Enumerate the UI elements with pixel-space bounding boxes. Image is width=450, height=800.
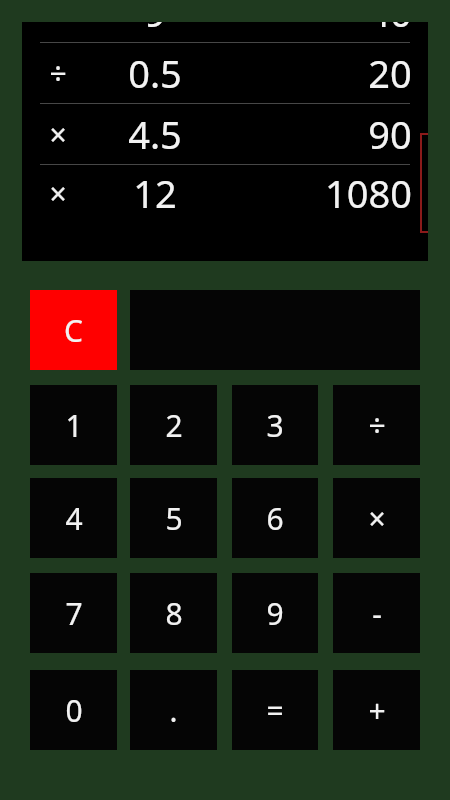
staticText: × (49, 173, 67, 214)
staticText: 4 (65, 498, 83, 539)
staticText: 8 (165, 593, 183, 634)
button[interactable]: C (30, 290, 117, 370)
button[interactable]: 0 (30, 670, 117, 750)
button[interactable]: 8 (130, 573, 217, 653)
staticText: × (368, 498, 386, 539)
staticText: ÷ (49, 53, 67, 94)
button[interactable]: 7 (30, 573, 117, 653)
button[interactable]: . (130, 670, 217, 750)
button[interactable]: × (22, 104, 428, 164)
staticText: = (266, 690, 284, 731)
button[interactable]: ÷ (333, 385, 420, 465)
staticText: × (49, 114, 67, 155)
staticText: 1 (65, 405, 83, 446)
staticText: 3 (266, 405, 284, 446)
button[interactable]: 2 (130, 385, 217, 465)
button[interactable]: 9 (232, 573, 318, 653)
button[interactable]: × (333, 478, 420, 558)
staticText: 0.5 (128, 47, 182, 99)
staticText: 4.5 (128, 108, 182, 160)
staticText: 9 (144, 22, 166, 38)
staticText: - (372, 593, 382, 634)
button[interactable]: 5 (130, 478, 217, 558)
staticText: 9 (266, 593, 284, 634)
staticText: 1080 (325, 167, 412, 219)
button[interactable]: × (22, 165, 428, 221)
button[interactable]: = (232, 670, 318, 750)
staticText: 2 (165, 405, 183, 446)
staticText: 7 (65, 593, 83, 634)
button[interactable]: 3 (232, 385, 318, 465)
staticText: 20 (368, 47, 412, 99)
button[interactable]: + (333, 670, 420, 750)
button[interactable]: ÷ (22, 43, 428, 103)
button[interactable]: + (22, 22, 428, 42)
button[interactable]: 4 (30, 478, 117, 558)
staticText: C (64, 310, 83, 351)
staticText: 5 (165, 498, 183, 539)
staticText: 40 (368, 22, 412, 38)
button[interactable]: + (22, 22, 428, 261)
staticText: 12 (133, 167, 177, 219)
button[interactable]: 6 (232, 478, 318, 558)
staticText: + (368, 690, 386, 731)
staticText: ÷ (368, 405, 386, 446)
button[interactable]: - (333, 573, 420, 653)
staticText: 6 (266, 498, 284, 539)
button[interactable]: 1 (30, 385, 117, 465)
staticText: 0 (65, 690, 83, 731)
staticText: . (169, 690, 178, 731)
staticText: 90 (368, 108, 412, 160)
